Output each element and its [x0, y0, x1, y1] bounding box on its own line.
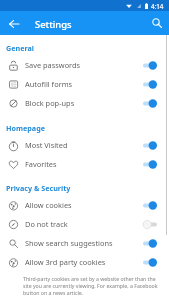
staticText: 4:14 — [151, 2, 164, 10]
staticText: Favorites — [25, 159, 57, 169]
button[interactable]: Block pop-ups — [0, 94, 169, 113]
staticText: Autofill forms — [25, 79, 73, 89]
button[interactable]: Allow 3rd party cookies — [0, 253, 169, 272]
button[interactable]: Favorites — [0, 155, 169, 174]
button[interactable]: Allow cookies — [0, 196, 169, 215]
button[interactable]: Do not track — [0, 215, 169, 234]
button[interactable]: Autofill forms — [0, 75, 169, 94]
staticText: Do not track — [25, 219, 68, 229]
staticText: Save passwords — [25, 60, 81, 70]
staticText: Settings — [35, 18, 72, 31]
button[interactable]: Most Visited — [0, 136, 169, 155]
button[interactable]: Search — [145, 11, 169, 35]
staticText: Most Visited — [25, 140, 68, 150]
staticText: Allow 3rd party cookies — [25, 257, 106, 267]
staticText: General — [6, 43, 34, 53]
button[interactable]: Save passwords — [0, 56, 169, 75]
staticText: Third-party cookies are set by a website… — [23, 275, 159, 296]
staticText: Show search suggestions — [25, 238, 113, 248]
staticText: Allow cookies — [25, 200, 72, 210]
staticText: Privacy & Security — [6, 183, 71, 193]
staticText: Block pop-ups — [25, 98, 75, 108]
button[interactable]: Back — [2, 11, 26, 35]
button[interactable]: Show search suggestions — [0, 234, 169, 253]
staticText: Homepage — [6, 123, 45, 133]
